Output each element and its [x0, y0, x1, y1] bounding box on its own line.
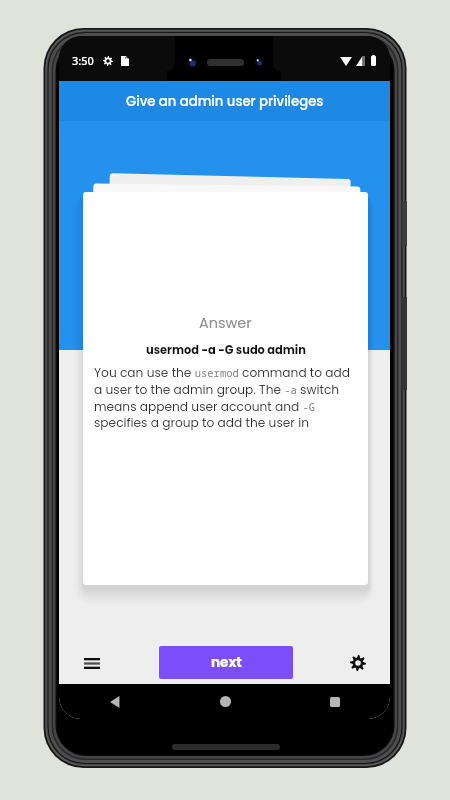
- button[interactable]: Back: [59, 684, 170, 719]
- staticText: Give an admin user privileges: [126, 92, 324, 110]
- staticText: Answer: [199, 313, 252, 333]
- staticText: next: [211, 653, 242, 672]
- button[interactable]: Menu: [76, 647, 108, 679]
- button[interactable]: Settings: [342, 647, 374, 679]
- staticText: usermod -a -G sudo admin: [146, 342, 306, 358]
- staticText: You can use the usermod command to add a…: [94, 364, 360, 431]
- button[interactable]: next: [159, 646, 293, 679]
- staticText: 3:50: [72, 53, 94, 68]
- button[interactable]: Recents: [280, 684, 390, 719]
- button[interactable]: Home: [170, 684, 280, 719]
